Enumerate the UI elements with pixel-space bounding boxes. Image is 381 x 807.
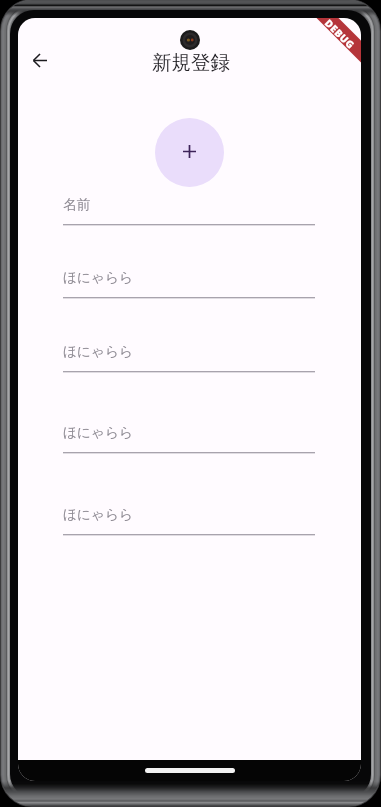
button[interactable]: ほにゃらら [63,267,315,298]
staticText: ほにゃらら [63,424,133,441]
button[interactable]: ほにゃらら [63,504,315,535]
button[interactable]: Add photo [155,118,224,187]
button[interactable]: ほにゃらら [63,422,315,453]
staticText: ほにゃらら [63,343,133,360]
button[interactable]: 名前 [63,194,315,225]
staticText: ほにゃらら [63,506,133,523]
staticText: ほにゃらら [63,269,133,286]
staticText: 名前 [63,196,91,213]
button[interactable]: ほにゃらら [63,341,315,372]
button[interactable]: Back [21,41,59,79]
staticText: 新規登録 [152,50,230,75]
